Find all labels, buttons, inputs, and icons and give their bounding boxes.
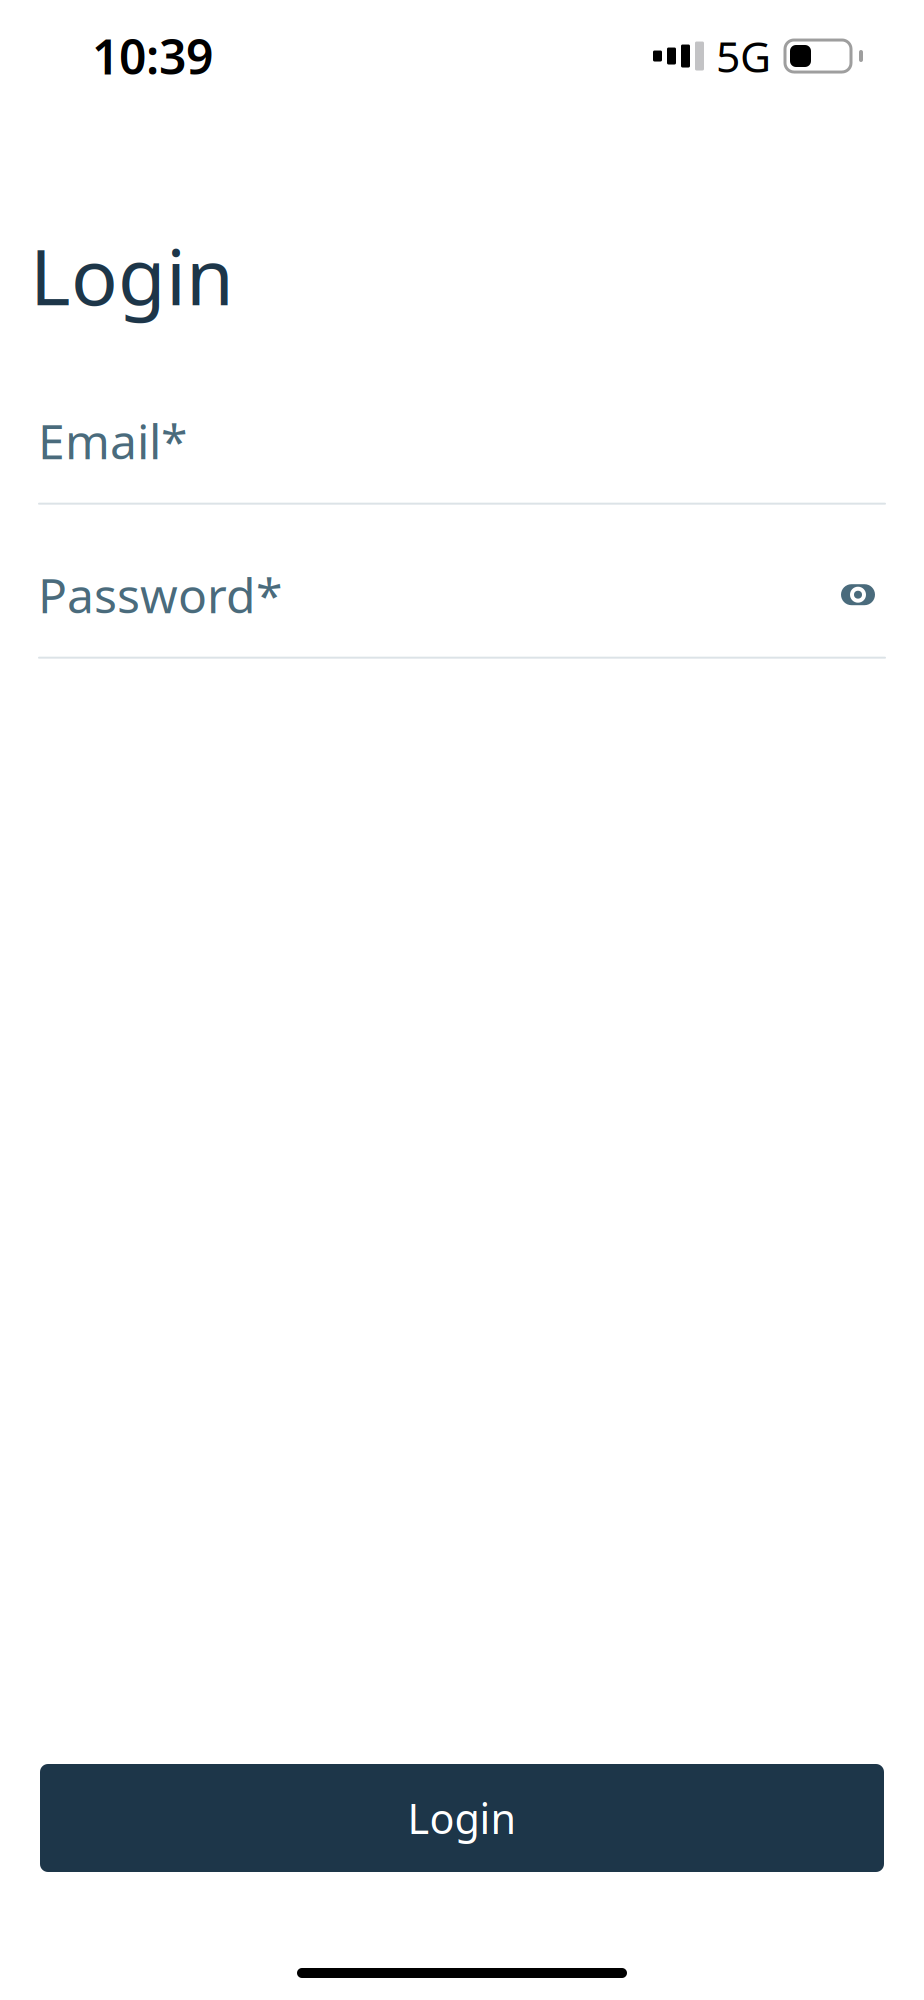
button[interactable]: Login: [40, 1764, 884, 1872]
staticText: Email*: [38, 409, 187, 472]
staticText: 10:39: [92, 24, 213, 88]
staticText: Login: [30, 224, 234, 327]
button[interactable]: Show password: [830, 567, 886, 623]
staticText: Password*: [38, 563, 282, 626]
staticText: Login: [407, 1791, 516, 1845]
staticText: 5G: [716, 28, 771, 84]
